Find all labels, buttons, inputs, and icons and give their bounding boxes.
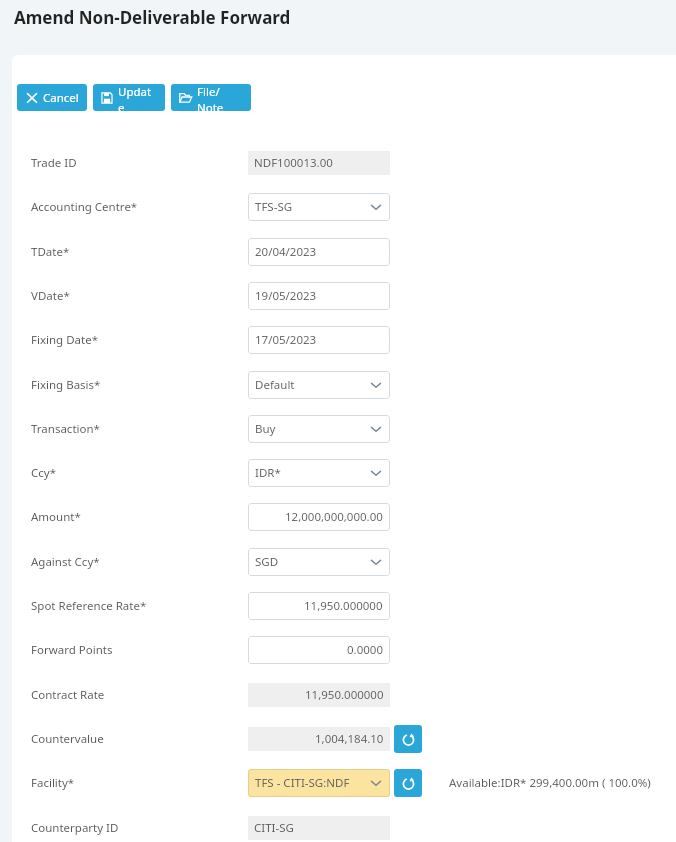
staticText: Transaction* — [31, 421, 100, 437]
staticText: Spot Reference Rate* — [31, 598, 147, 614]
button[interactable]: Update — [93, 84, 165, 111]
staticText: 12,000,000,000.00 — [285, 509, 383, 525]
button[interactable]: 17/05/2023 — [248, 326, 390, 354]
staticText: VDate* — [31, 288, 70, 304]
staticText: Accounting Centre* — [31, 199, 138, 215]
button[interactable]: 0.0000 — [248, 636, 390, 664]
button[interactable]: SGD — [248, 548, 390, 576]
button[interactable]: IDR* — [248, 459, 390, 487]
staticText: Cancel — [43, 90, 79, 106]
staticText: SGD — [255, 554, 369, 570]
staticText: Counterparty ID — [31, 820, 119, 836]
staticText: 0.0000 — [347, 642, 383, 658]
staticText: Fixing Basis* — [31, 377, 101, 393]
staticText: Against Ccy* — [31, 554, 100, 570]
staticText: 17/05/2023 — [255, 332, 317, 348]
staticText: NDF100013.00 — [254, 155, 333, 171]
staticText: 20/04/2023 — [255, 244, 317, 260]
button[interactable]: 1,004,184.10 — [248, 727, 390, 751]
button[interactable]: NDF100013.00 — [248, 151, 390, 175]
staticText: Amount* — [31, 509, 81, 525]
button[interactable]: CITI-SG — [248, 816, 390, 840]
staticText: Amend Non-Deliverable Forward — [14, 6, 291, 29]
staticText: TFS - CITI-SG:NDF — [255, 775, 369, 791]
button[interactable]: 12,000,000,000.00 — [248, 503, 390, 531]
staticText: CITI-SG — [254, 820, 294, 836]
staticText: IDR* — [255, 465, 369, 481]
button[interactable]: 11,950.000000 — [248, 683, 390, 707]
button[interactable]: Default — [248, 371, 390, 399]
staticText: Update — [118, 84, 157, 111]
button[interactable]: 11,950.000000 — [248, 592, 390, 620]
staticText: TDate* — [31, 244, 70, 260]
staticText: Contract Rate — [31, 687, 105, 703]
staticText: 1,004,184.10 — [315, 731, 384, 747]
button[interactable]: TFS - CITI-SG:NDF — [248, 769, 390, 797]
button[interactable]: Refresh — [394, 725, 422, 753]
staticText: Ccy* — [31, 465, 56, 481]
staticText: Buy — [255, 421, 369, 437]
staticText: Facility* — [31, 775, 75, 791]
staticText: Forward Points — [31, 642, 113, 658]
staticText: Available:IDR* 299,400.00m ( 100.0%) — [449, 775, 651, 791]
staticText: 19/05/2023 — [255, 288, 317, 304]
button[interactable]: Refresh — [394, 769, 422, 797]
button[interactable]: TFS-SG — [248, 193, 390, 221]
staticText: 11,950.000000 — [304, 598, 383, 614]
staticText: 11,950.000000 — [305, 687, 384, 703]
staticText: Trade ID — [31, 155, 77, 171]
button[interactable]: Buy — [248, 415, 390, 443]
staticText: Default — [255, 377, 369, 393]
staticText: TFS-SG — [255, 199, 369, 215]
button[interactable]: 19/05/2023 — [248, 282, 390, 310]
staticText: Fixing Date* — [31, 332, 98, 348]
button[interactable]: Cancel — [17, 84, 87, 111]
button[interactable]: 20/04/2023 — [248, 238, 390, 266]
staticText: File/Note — [197, 84, 243, 111]
button[interactable]: File/Note — [171, 84, 251, 111]
staticText: Countervalue — [31, 731, 104, 747]
